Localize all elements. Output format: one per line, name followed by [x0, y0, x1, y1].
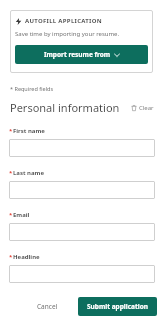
staticText: Import resume from	[44, 50, 111, 59]
staticText: *	[9, 211, 13, 219]
staticText: *	[9, 127, 13, 135]
staticText: Personal information	[10, 100, 120, 115]
button[interactable]: Import resume from	[15, 45, 148, 64]
staticText: AUTOFILL APPLICATION	[25, 17, 102, 25]
button[interactable]	[9, 181, 155, 199]
staticText: Cancel	[37, 302, 58, 311]
button[interactable]: Clear	[131, 104, 154, 112]
staticText: *	[9, 169, 13, 177]
button[interactable]	[9, 139, 155, 157]
staticText: Headline	[13, 253, 40, 261]
button[interactable]	[9, 223, 155, 241]
staticText: Save time by importing your resume.	[15, 30, 120, 38]
button[interactable]	[9, 265, 155, 283]
staticText: Clear	[139, 104, 154, 112]
staticText: Last name	[13, 169, 45, 177]
button[interactable]: Cancel	[29, 298, 66, 315]
staticText: Submit application	[87, 302, 148, 311]
staticText: * Required fields	[10, 85, 54, 92]
staticText: First name	[13, 127, 45, 135]
staticText: Email	[13, 211, 30, 219]
staticText: *	[9, 253, 13, 261]
button[interactable]: Submit application	[78, 297, 157, 316]
